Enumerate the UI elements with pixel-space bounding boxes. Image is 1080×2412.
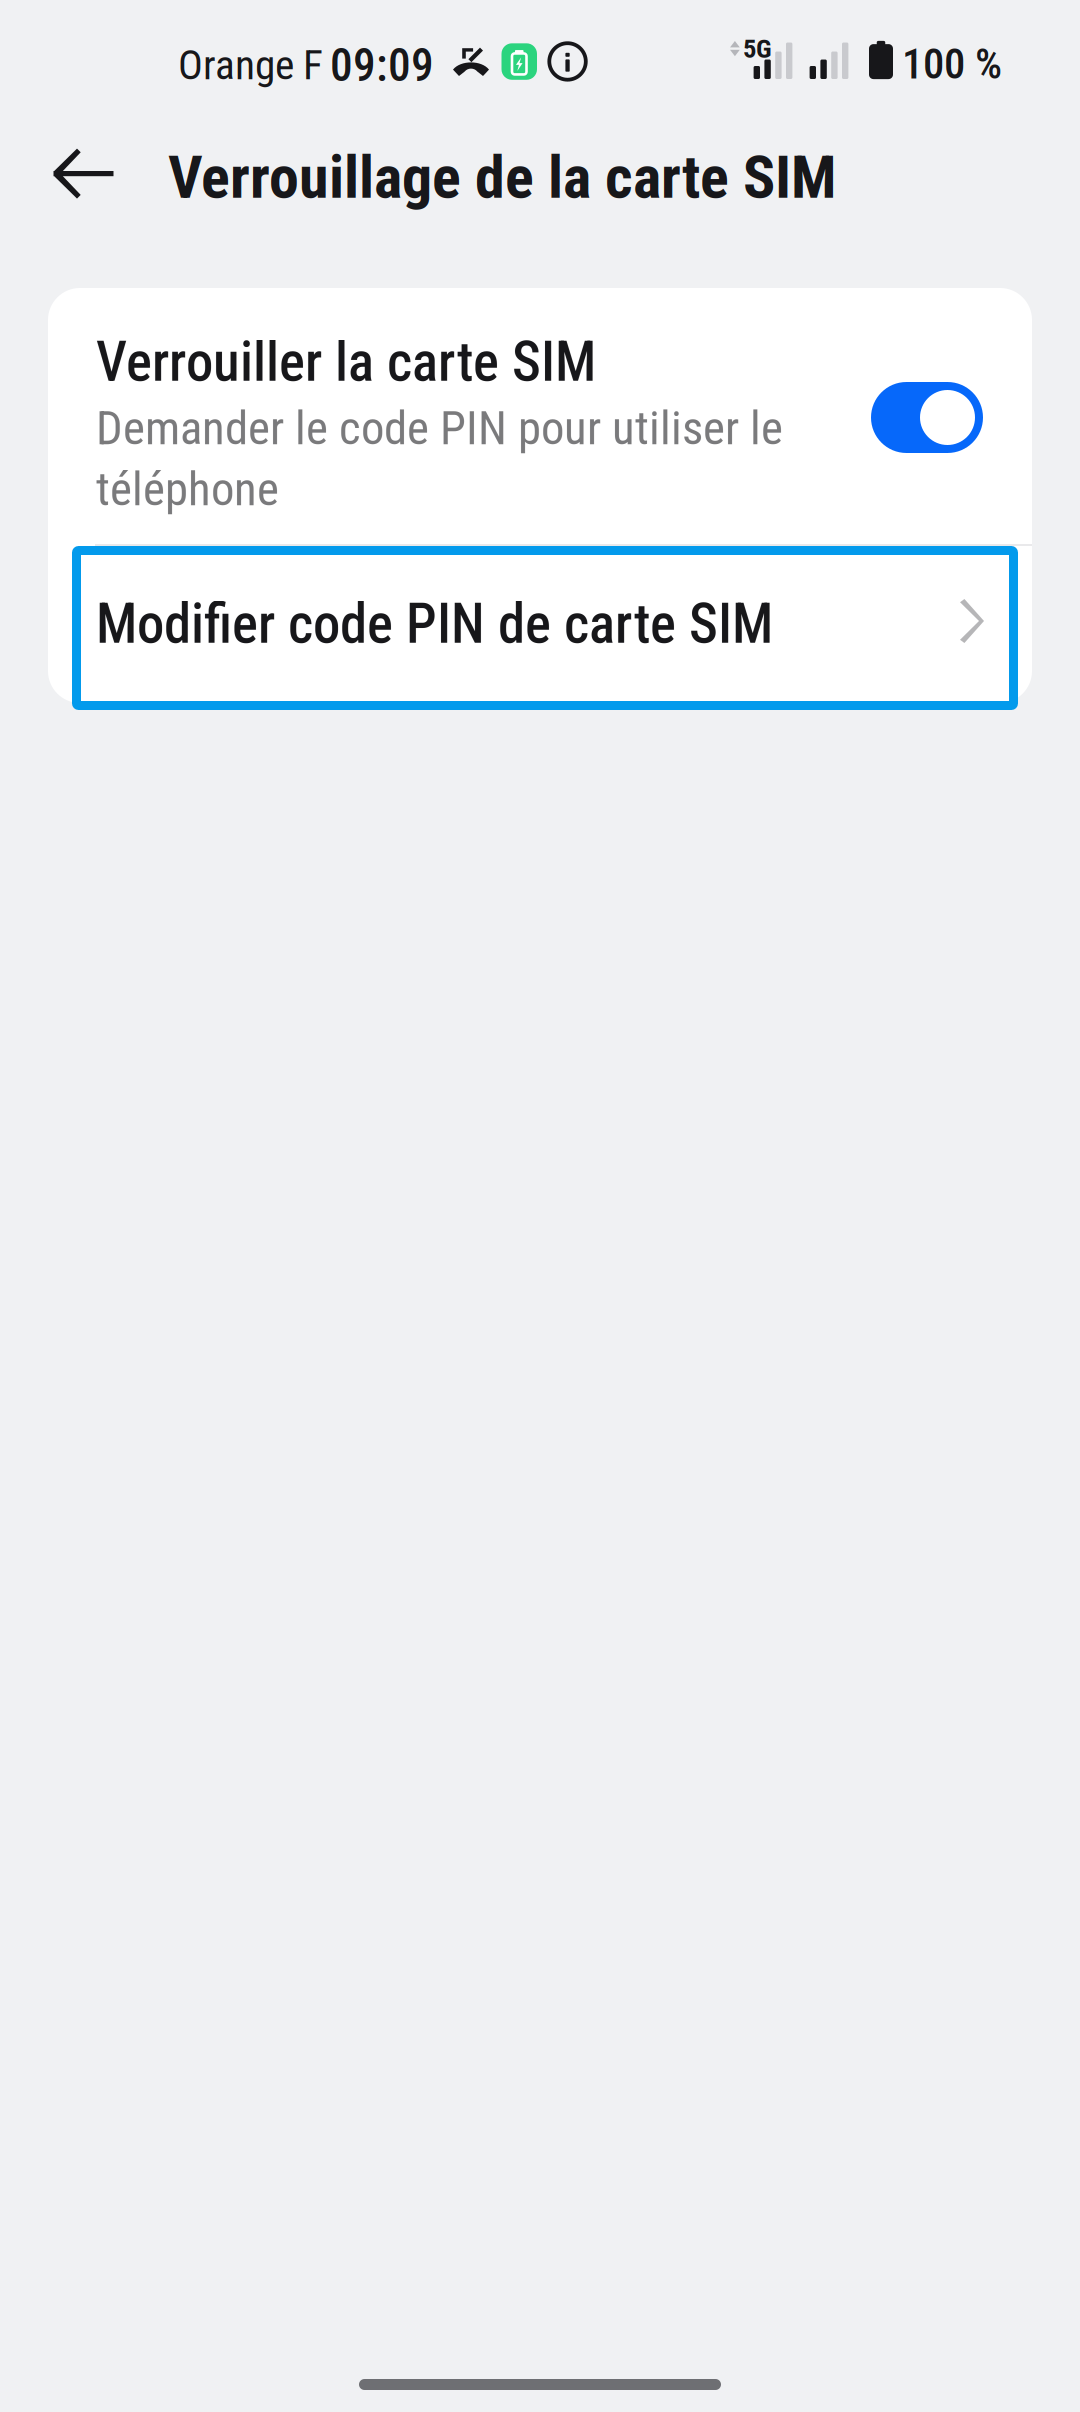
button[interactable]: Verrouiller la carte SIM xyxy=(48,288,1032,544)
staticText: téléphone xyxy=(96,462,279,517)
staticText: Verrouillage de la carte SIM xyxy=(168,142,836,212)
staticText: 100 % xyxy=(902,39,1002,89)
staticText: Demander le code PIN pour utiliser le xyxy=(96,401,783,456)
staticText: Modifier code PIN de carte SIM xyxy=(96,592,773,656)
staticText: 09:09 xyxy=(330,39,434,92)
staticText: Verrouiller la carte SIM xyxy=(96,330,596,394)
button[interactable]: Retour xyxy=(0,122,116,226)
button[interactable]: Modifier code PIN de carte SIM xyxy=(48,546,1032,703)
staticText: 5G xyxy=(743,33,772,64)
staticText: Orange F xyxy=(178,41,323,89)
